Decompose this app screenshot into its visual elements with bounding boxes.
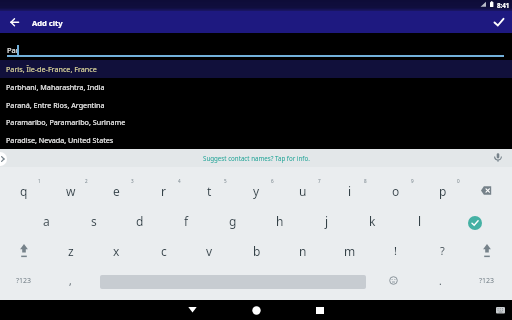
- button[interactable]: w: [47, 176, 94, 205]
- staticText: Add city: [32, 18, 63, 28]
- button[interactable]: [0, 131, 512, 149]
- staticText: 4: [178, 178, 181, 184]
- button[interactable]: i: [326, 176, 373, 205]
- button[interactable]: g: [209, 206, 256, 235]
- button[interactable]: .: [417, 266, 464, 295]
- button[interactable]: [494, 305, 507, 315]
- button[interactable]: [0, 236, 47, 265]
- staticText: e: [113, 183, 120, 199]
- staticText: k: [369, 213, 376, 229]
- staticText: n: [299, 243, 307, 259]
- staticText: g: [229, 213, 237, 229]
- staticText: ?: [440, 243, 445, 258]
- button[interactable]: ?123: [463, 266, 510, 295]
- button[interactable]: [0, 113, 512, 131]
- staticText: 0: [457, 178, 460, 184]
- staticText: Paradise, Nevada, United States: [6, 135, 114, 145]
- staticText: b: [253, 243, 261, 259]
- button[interactable]: ?123: [0, 266, 47, 295]
- staticText: Par: [7, 45, 19, 55]
- staticText: Paris, Île-de-France, France: [6, 64, 97, 74]
- button[interactable]: r: [140, 176, 187, 205]
- staticText: 3: [131, 178, 134, 184]
- staticText: m: [344, 243, 356, 259]
- button[interactable]: l: [396, 206, 443, 235]
- button[interactable]: [0, 78, 512, 96]
- staticText: i: [348, 183, 352, 199]
- staticText: h: [276, 213, 284, 229]
- button[interactable]: e: [93, 176, 140, 205]
- button[interactable]: [490, 150, 506, 166]
- staticText: x: [113, 243, 120, 259]
- button[interactable]: y: [233, 176, 280, 205]
- staticText: c: [161, 243, 167, 259]
- button[interactable]: [7, 14, 23, 30]
- button[interactable]: [0, 96, 512, 114]
- button[interactable]: [491, 14, 507, 30]
- button[interactable]: f: [163, 206, 210, 235]
- button[interactable]: c: [140, 236, 187, 265]
- button[interactable]: j: [303, 206, 350, 235]
- button[interactable]: [463, 236, 510, 265]
- staticText: .: [439, 274, 442, 288]
- staticText: p: [439, 183, 447, 199]
- button[interactable]: [468, 216, 482, 230]
- staticText: s: [91, 213, 97, 229]
- staticText: 1: [38, 178, 41, 184]
- button[interactable]: v: [186, 236, 233, 265]
- staticText: u: [299, 183, 307, 199]
- button[interactable]: [178, 300, 206, 320]
- button[interactable]: [242, 300, 270, 320]
- staticText: 2: [85, 178, 88, 184]
- staticText: 8: [364, 178, 367, 184]
- staticText: 5: [224, 178, 227, 184]
- button[interactable]: s: [70, 206, 117, 235]
- button[interactable]: [463, 176, 510, 205]
- button[interactable]: [0, 60, 512, 78]
- button[interactable]: !: [372, 236, 419, 265]
- staticText: y: [253, 183, 260, 199]
- staticText: a: [43, 213, 50, 229]
- staticText: !: [394, 243, 397, 258]
- button[interactable]: n: [279, 236, 326, 265]
- staticText: ?123: [479, 276, 495, 286]
- button[interactable]: u: [279, 176, 326, 205]
- staticText: j: [325, 213, 329, 229]
- staticText: r: [161, 183, 166, 199]
- staticText: f: [184, 213, 189, 229]
- button[interactable]: ,: [47, 266, 94, 295]
- staticText: t: [207, 183, 212, 199]
- staticText: d: [136, 213, 144, 229]
- button[interactable]: d: [116, 206, 163, 235]
- staticText: 7: [318, 178, 321, 184]
- staticText: Paraná, Entre Rios, Argentina: [6, 100, 105, 110]
- staticText: 8:41: [497, 1, 510, 9]
- button[interactable]: o: [372, 176, 419, 205]
- staticText: Paramaribo, Paramaribo, Suriname: [6, 117, 126, 127]
- button[interactable]: ?: [419, 236, 466, 265]
- staticText: q: [20, 183, 28, 199]
- button[interactable]: [0, 149, 512, 167]
- staticText: Suggest contact names? Tap for info.: [203, 154, 310, 162]
- button[interactable]: t: [186, 176, 233, 205]
- staticText: w: [66, 183, 76, 199]
- button[interactable]: a: [23, 206, 70, 235]
- staticText: z: [68, 243, 74, 259]
- button[interactable]: h: [256, 206, 303, 235]
- button[interactable]: q: [0, 176, 47, 205]
- staticText: ?123: [16, 276, 32, 286]
- button[interactable]: k: [349, 206, 396, 235]
- staticText: 6: [271, 178, 274, 184]
- staticText: v: [206, 243, 213, 259]
- staticText: 9: [411, 178, 414, 184]
- button[interactable]: m: [326, 236, 373, 265]
- staticText: Parbhani, Maharashtra, India: [6, 82, 105, 92]
- button[interactable]: [306, 300, 334, 320]
- button[interactable]: [0, 152, 7, 166]
- button[interactable]: z: [47, 236, 94, 265]
- button[interactable]: x: [93, 236, 140, 265]
- button[interactable]: p: [419, 176, 466, 205]
- button[interactable]: [370, 266, 417, 295]
- button[interactable]: b: [233, 236, 280, 265]
